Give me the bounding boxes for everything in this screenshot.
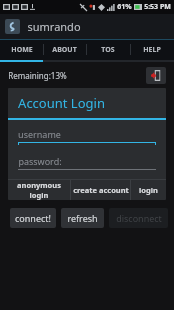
button[interactable]: TOS (86, 39, 130, 60)
staticText: login (139, 185, 158, 195)
staticText: connect! (15, 212, 51, 224)
staticText: disconnect (116, 212, 162, 224)
staticText: HOME (11, 45, 33, 55)
staticText: TOS (101, 45, 115, 55)
staticText: Remaining:13% (8, 70, 67, 81)
button[interactable]: disconnect (109, 208, 168, 228)
staticText: refresh (67, 212, 98, 224)
staticText: sumrando (27, 19, 81, 34)
button[interactable]: anonymous login (8, 180, 70, 200)
staticText: 61% (117, 2, 132, 12)
staticText: create account (73, 185, 129, 195)
button[interactable]: connect! (10, 208, 56, 228)
staticText: username (18, 128, 61, 140)
button[interactable]: login (131, 180, 166, 200)
button[interactable]: HOME (0, 39, 43, 60)
staticText: anonymous login (8, 180, 70, 200)
button[interactable]: refresh (61, 208, 104, 228)
button[interactable]: ABOUT (43, 39, 86, 60)
button[interactable]: username (18, 127, 156, 145)
button[interactable]: password: (18, 154, 156, 170)
button[interactable]: HELP (130, 39, 174, 60)
button[interactable]: sumrando (0, 14, 174, 39)
staticText: ABOUT (52, 45, 77, 55)
staticText: password: (18, 155, 62, 167)
staticText: Account Login (18, 94, 105, 112)
staticText: HELP (143, 45, 161, 55)
button[interactable]: Exit (146, 67, 166, 84)
button[interactable]: create account (71, 180, 130, 200)
staticText: 5:53 PM (144, 2, 171, 12)
